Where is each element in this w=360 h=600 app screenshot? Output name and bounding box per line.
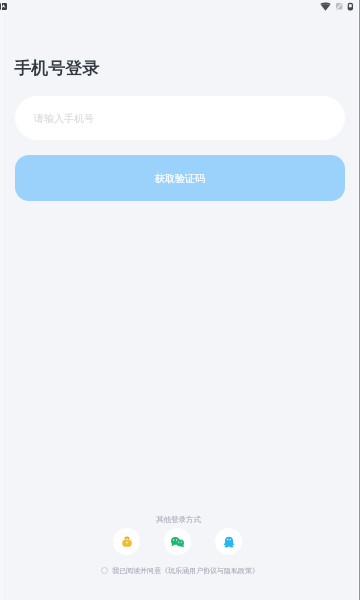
button[interactable]: WeChat login — [164, 528, 191, 555]
button[interactable]: QQ login — [215, 528, 242, 555]
button[interactable]: Alipay login — [113, 528, 140, 555]
staticText: 获取验证码 — [155, 172, 205, 185]
button[interactable]: 我已阅读并同意《玩乐涵用户协议与隐私政策》 — [0, 566, 360, 575]
staticText: 我已阅读并同意《玩乐涵用户协议与隐私政策》 — [112, 566, 259, 575]
button[interactable]: 获取验证码 — [15, 155, 345, 201]
staticText: 请输入手机号 — [34, 112, 94, 125]
staticText: 手机号登录 — [14, 58, 99, 79]
staticText: 其他登录方式 — [156, 515, 201, 524]
button[interactable]: 请输入手机号 — [15, 96, 345, 140]
